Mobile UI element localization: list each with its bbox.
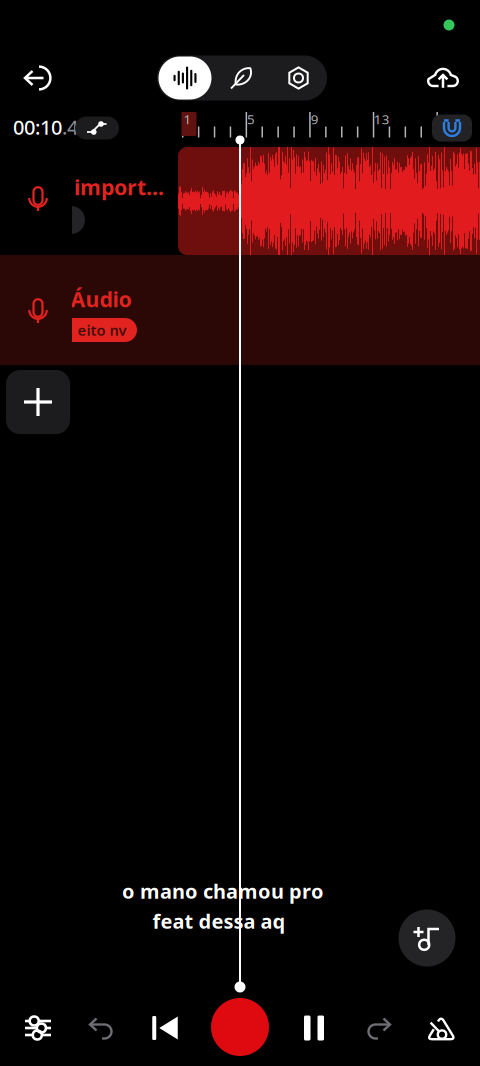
staticText: 1 (183, 110, 191, 128)
button[interactable]: Automation (75, 116, 119, 139)
staticText: feat dessa aq (152, 908, 285, 934)
button[interactable]: Metronome (415, 1001, 469, 1055)
staticText: 00:10 (13, 114, 62, 140)
staticText: 9 (311, 110, 319, 128)
button[interactable]: Track 1 input (17, 179, 59, 221)
button[interactable]: Redo (351, 1001, 405, 1055)
button[interactable]: Pause (287, 1001, 341, 1055)
button[interactable]: Go to start (138, 1001, 192, 1055)
staticText: .4 (62, 114, 78, 140)
staticText: 1 (183, 110, 191, 128)
button[interactable]: Record (211, 998, 269, 1056)
staticText: import... (74, 173, 164, 201)
button[interactable]: Exit (10, 50, 66, 106)
button[interactable]: Track 2 input (17, 291, 59, 333)
button[interactable]: Add track (6, 370, 70, 434)
button[interactable]: Undo (75, 1001, 129, 1055)
staticText: 5 (247, 110, 255, 128)
button[interactable]: Mixer (11, 1001, 65, 1055)
button[interactable]: Add music (398, 909, 455, 966)
button[interactable]: Snap to grid (432, 114, 472, 141)
staticText: Áudio (70, 285, 131, 313)
button[interactable]: Upload to cloud (415, 50, 471, 106)
button[interactable]: Lyrics view (213, 55, 270, 100)
button[interactable]: Tracks view (157, 55, 213, 100)
button[interactable]: Mastering view (270, 55, 327, 100)
staticText: o mano chamou pro (122, 878, 324, 904)
staticText: eito nv (77, 320, 126, 340)
staticText: 13 (374, 110, 390, 128)
